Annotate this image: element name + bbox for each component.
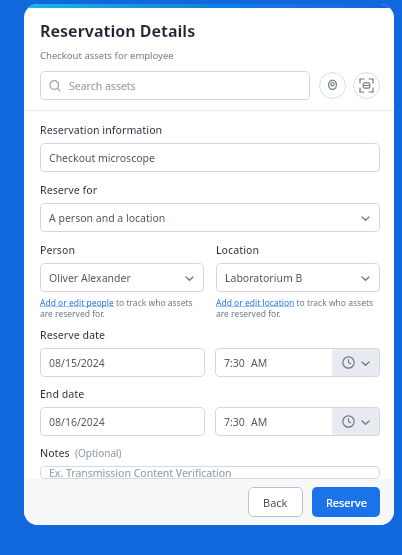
button[interactable]: 7:30 (215, 407, 380, 436)
staticText: Reserve date (40, 328, 106, 342)
other: Pick time (342, 356, 355, 369)
staticText: Reserve for (40, 183, 98, 197)
staticText: Checkout assets for employee (40, 49, 174, 62)
staticText: Location (216, 243, 260, 257)
staticText: Add or edit location to track who assets… (216, 297, 380, 319)
staticText: Person (40, 243, 75, 257)
button[interactable]: Location (319, 72, 346, 99)
staticText: Search assets (69, 79, 136, 93)
staticText: Add or edit people to track who assets a… (40, 297, 204, 319)
button[interactable]: A person and a location (40, 203, 380, 232)
other: Pick time (342, 415, 355, 428)
button[interactable]: Reserve (312, 487, 380, 517)
staticText: AM (251, 356, 268, 370)
staticText: AM (251, 415, 268, 429)
staticText: Reservation information (40, 123, 163, 137)
staticText: End date (40, 387, 85, 401)
button[interactable]: Scan barcode (353, 72, 380, 99)
staticText: Laboratorium B (225, 271, 360, 285)
staticText: 08/16/2024 (49, 415, 196, 429)
staticText: Ex. Transmission Content Verification (49, 466, 371, 479)
button[interactable]: Search assets (40, 71, 310, 100)
button[interactable]: Back (248, 487, 303, 517)
staticText: Reservation Details (40, 20, 196, 42)
staticText: 7:30 (224, 356, 245, 370)
button[interactable]: 08/16/2024 (40, 407, 205, 436)
staticText: Reserve (326, 495, 367, 510)
button[interactable]: 7:30 (215, 348, 380, 377)
staticText: 7:30 (224, 415, 245, 429)
staticText: (Optional) (75, 446, 122, 460)
staticText: A person and a location (49, 211, 360, 225)
button[interactable]: Laboratorium B (216, 263, 380, 292)
button[interactable]: 08/15/2024 (40, 348, 205, 377)
staticText: Notes (40, 446, 70, 460)
staticText: Back (263, 495, 288, 510)
staticText: Checkout microscope (49, 151, 371, 165)
button[interactable]: Ex. Transmission Content Verification (40, 466, 380, 479)
staticText: 08/15/2024 (49, 356, 196, 370)
button[interactable]: Checkout microscope (40, 143, 380, 172)
staticText: Oliver Alexander (49, 271, 184, 285)
button[interactable]: Oliver Alexander (40, 263, 204, 292)
